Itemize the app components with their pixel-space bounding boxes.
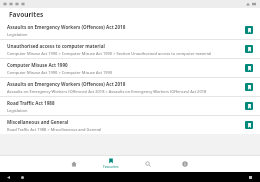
button[interactable]: Miscellaneous and General (0, 116, 260, 134)
button[interactable]: Remove from favourites (245, 121, 253, 129)
button[interactable]: Back (6, 175, 11, 180)
button[interactable]: Computer Misuse Act 1990 (0, 59, 260, 77)
staticText: Assaults on Emergency Workers (Offences)… (7, 24, 126, 30)
staticText: Assaults on Emergency Workers (Offences)… (7, 89, 207, 94)
staticText: Legislation (7, 32, 28, 37)
button[interactable]: Navigation tab (129, 155, 166, 172)
staticText: Road Traffic Act 1988 > Miscellaneous an… (7, 127, 102, 132)
button[interactable]: Remove from favourites (245, 64, 253, 72)
button[interactable]: Remove from favourites (245, 102, 253, 110)
staticText: Road Traffic Act 1988 (7, 100, 55, 106)
button[interactable]: Remove from favourites (245, 83, 253, 91)
staticText: Computer Misuse Act 1990 > Computer Misu… (7, 70, 113, 75)
staticText: Assaults on Emergency Workers (Offences)… (7, 81, 126, 87)
staticText: Miscellaneous and General (7, 119, 69, 125)
button[interactable]: Home (20, 175, 25, 180)
staticText: Favourites (103, 165, 119, 169)
button[interactable]: Favourites (92, 155, 129, 172)
button[interactable]: Road Traffic Act 1988 (0, 97, 260, 115)
staticText: Computer Misuse Act 1990 > Computer Misu… (7, 51, 212, 56)
button[interactable]: Assaults on Emergency Workers (Offences)… (0, 78, 260, 96)
button[interactable]: Remove from favourites (245, 45, 253, 53)
button[interactable]: Remove from favourites (245, 26, 253, 34)
button[interactable]: Navigation tab (56, 155, 92, 172)
button[interactable]: Assaults on Emergency Workers (Offences)… (0, 21, 260, 39)
button[interactable]: Recent apps (248, 175, 253, 180)
staticText: Legislation (7, 108, 28, 113)
button[interactable]: Unauthorised access to computer material (0, 40, 260, 58)
button[interactable]: Navigation tab (166, 155, 203, 172)
staticText: Unauthorised access to computer material (7, 43, 105, 49)
staticText: Computer Misuse Act 1990 (7, 62, 68, 68)
staticText: Favourites (9, 10, 44, 19)
